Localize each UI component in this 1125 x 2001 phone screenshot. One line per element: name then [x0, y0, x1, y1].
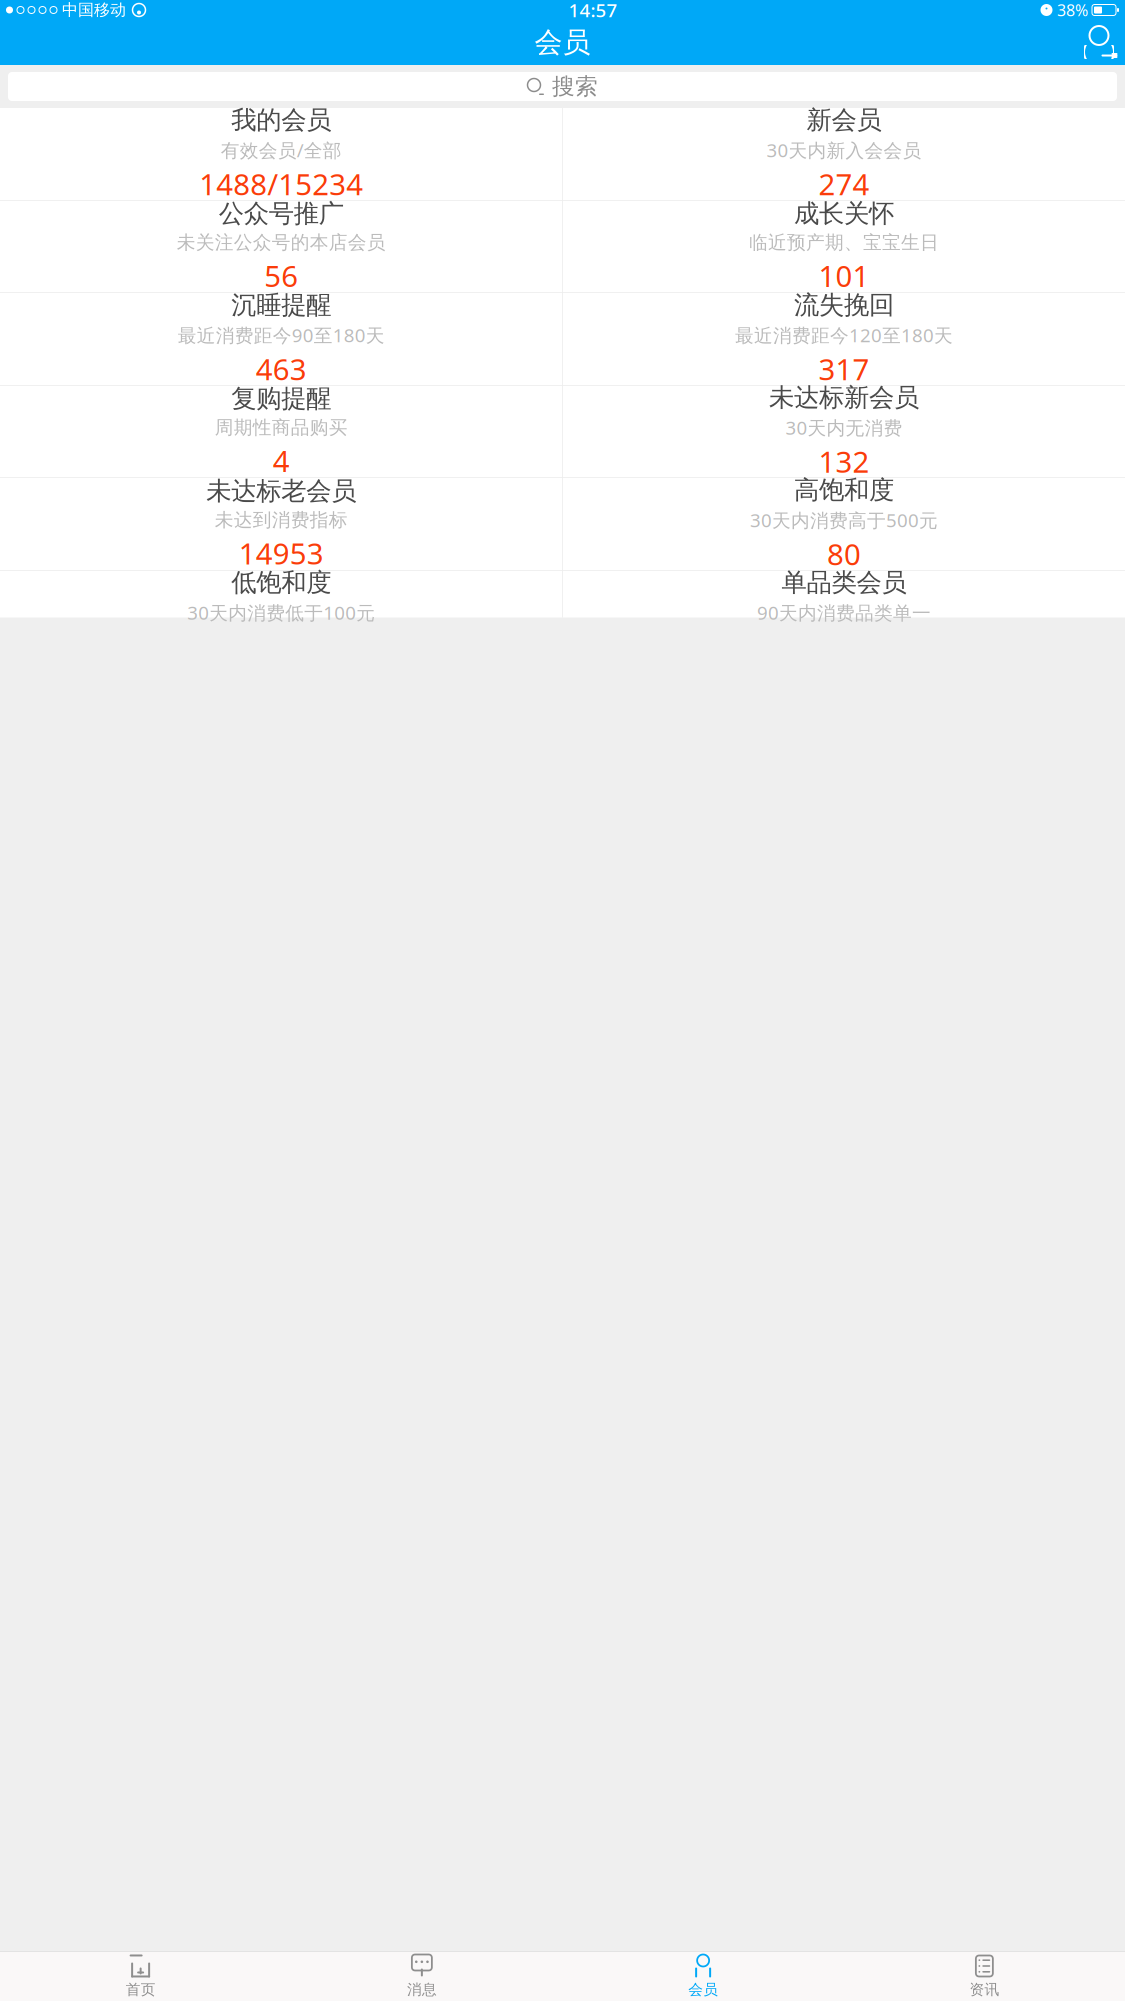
staticText: 复购提醒	[231, 383, 331, 414]
staticText: 132	[818, 442, 869, 481]
staticText: 1488/15234	[199, 164, 363, 203]
staticText: 未达标新会员	[769, 382, 919, 413]
button[interactable]: 搜索	[0, 65, 1125, 108]
staticText: 317	[818, 349, 869, 388]
button[interactable]: 成长关怀	[563, 200, 1125, 292]
staticText: 80	[827, 534, 861, 573]
staticText: 消息	[407, 1980, 437, 1998]
staticText: 搜索	[552, 73, 598, 100]
button[interactable]: 我的会员	[0, 108, 562, 200]
button[interactable]: 会员	[562, 1952, 844, 2001]
staticText: 14:57	[568, 0, 617, 22]
button[interactable]: 未达标老会员	[0, 478, 562, 570]
staticText: 56	[264, 256, 298, 295]
button[interactable]: 复购提醒	[0, 385, 562, 477]
button[interactable]: 首页	[0, 1952, 281, 2001]
staticText: 中国移动	[62, 0, 126, 20]
staticText: 274	[818, 164, 869, 203]
button[interactable]: 流失挽回	[563, 293, 1125, 385]
button[interactable]: 消息	[281, 1952, 562, 2001]
staticText: 新会员	[806, 105, 881, 136]
staticText: 流失挽回	[794, 290, 894, 321]
button[interactable]: 切换账号	[1073, 20, 1125, 64]
staticText: 38%	[1057, 0, 1088, 21]
button[interactable]: 低饱和度	[0, 570, 562, 617]
button[interactable]: 公众号推广	[0, 200, 562, 292]
staticText: 463	[256, 349, 307, 388]
staticText: 成长关怀	[794, 198, 894, 229]
button[interactable]: 资讯	[844, 1952, 1125, 2001]
staticText: 单品类会员	[781, 567, 906, 598]
staticText: 最近消费距今120至180天	[735, 323, 953, 347]
staticText: 未达到消费指标	[215, 509, 348, 531]
staticText: 4	[273, 441, 290, 480]
staticText: 我的会员	[231, 105, 331, 136]
staticText: 未关注公众号的本店会员	[177, 231, 386, 254]
staticText: 最近消费距今90至180天	[178, 323, 385, 347]
staticText: 资讯	[969, 1980, 999, 1998]
staticText: 高饱和度	[794, 475, 894, 506]
button[interactable]: 沉睡提醒	[0, 293, 562, 385]
staticText: 首页	[126, 1980, 156, 1998]
staticText: 低饱和度	[231, 567, 331, 598]
button[interactable]: 新会员	[563, 108, 1125, 200]
staticText: 有效会员/全部	[221, 138, 342, 162]
staticText: 30天内消费低于100元	[187, 600, 375, 625]
staticText: 沉睡提醒	[231, 290, 331, 321]
staticText: 周期性商品购买	[215, 416, 348, 439]
staticText: 公众号推广	[219, 198, 344, 229]
button[interactable]: 高饱和度	[563, 478, 1125, 570]
staticText: 101	[818, 256, 869, 295]
staticText: 临近预产期、宝宝生日	[749, 231, 939, 254]
staticText: 30天内新入会会员	[766, 138, 921, 162]
staticText: 30天内消费高于500元	[750, 508, 938, 532]
button[interactable]: 单品类会员	[563, 570, 1125, 617]
staticText: 未达标老会员	[206, 475, 356, 507]
staticText: 14953	[239, 533, 324, 572]
staticText: 90天内消费品类单一	[757, 600, 931, 625]
staticText: 会员	[534, 25, 590, 60]
staticText: 会员	[688, 1980, 718, 1998]
staticText: 30天内无消费	[785, 415, 902, 440]
button[interactable]: 未达标新会员	[563, 385, 1125, 477]
